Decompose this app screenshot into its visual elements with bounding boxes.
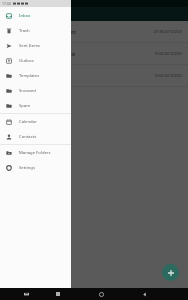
staticText: Outbox (19, 58, 34, 64)
staticText: Sent Items (19, 43, 41, 49)
staticText: Manage Folders (19, 150, 51, 156)
staticText: Contacts (19, 134, 37, 140)
button[interactable]: Sent Items (0, 38, 71, 53)
button[interactable]: Inbox (0, 8, 71, 23)
button[interactable]: Snoozed (0, 83, 71, 98)
button[interactable]: Calendar (0, 114, 71, 129)
button[interactable]: Trash (0, 23, 71, 38)
button[interactable]: Manage Folders (0, 145, 71, 160)
staticText: Welcome aboard! Get started now (5, 51, 151, 57)
button[interactable]: Templates (0, 68, 71, 83)
staticText: 17:44 (2, 1, 11, 6)
staticText: Spam (19, 103, 31, 109)
staticText: Inbox (19, 13, 31, 19)
button[interactable]: Back (138, 288, 150, 300)
staticText: Settings (19, 165, 35, 171)
staticText: 16:58 20/12/2021 (154, 51, 183, 56)
staticText: Snoozed (19, 88, 36, 94)
button[interactable]: Spam (0, 98, 71, 113)
button[interactable]: Recent apps (52, 288, 64, 300)
button[interactable]: Outbox (0, 53, 71, 68)
staticText: Templates (19, 73, 40, 79)
button[interactable]: Contacts (0, 129, 71, 144)
button[interactable]: Settings (0, 160, 71, 175)
button[interactable]: Compose new mail (162, 264, 179, 281)
button[interactable]: Keyboard (20, 288, 32, 300)
staticText: Trash (19, 28, 30, 34)
staticText: 16:56 20/12/2021 (154, 73, 183, 78)
staticText: 07:38 23/12/2021 (154, 29, 183, 34)
button[interactable]: Home (95, 288, 107, 300)
staticText: Calendar (19, 119, 37, 125)
staticText: Did you receive my earlier note? (5, 73, 151, 79)
staticText: Re: Invitation to join Zoho Account (5, 29, 151, 35)
